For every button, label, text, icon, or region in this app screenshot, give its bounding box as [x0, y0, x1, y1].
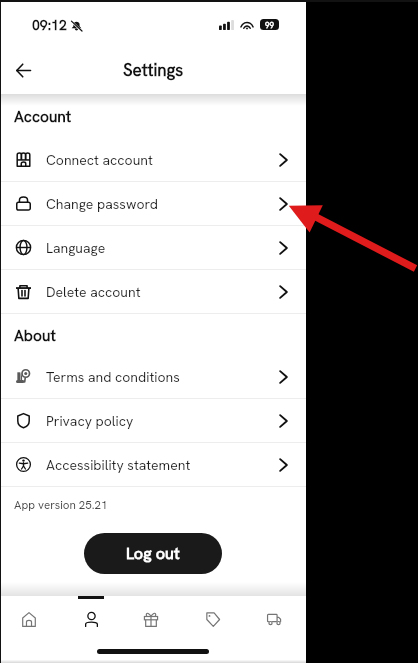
button[interactable]: Account [66, 596, 116, 640]
button[interactable]: Gifts [126, 596, 176, 640]
staticText: Terms and conditions [46, 368, 180, 386]
button[interactable]: Connect account [0, 138, 306, 182]
staticText: Change password [46, 195, 159, 213]
staticText: Language [46, 239, 106, 257]
button[interactable]: Delivery [249, 596, 299, 640]
staticText: Accessibility statement [46, 456, 191, 474]
staticText: Privacy policy [46, 412, 134, 430]
button[interactable]: Delete account [0, 270, 306, 314]
staticText: 99 [265, 20, 274, 30]
staticText: Connect account [46, 151, 153, 169]
button[interactable]: Back [8, 55, 38, 85]
staticText: Log out [126, 543, 180, 564]
staticText: About [14, 325, 56, 345]
staticText: Delete account [46, 283, 141, 301]
button[interactable]: Offers [188, 596, 238, 640]
button[interactable]: Privacy policy [0, 399, 306, 443]
button[interactable]: Home [4, 596, 54, 640]
staticText: Account [14, 106, 72, 126]
staticText: Settings [123, 59, 184, 81]
staticText: 09:12 [32, 16, 67, 34]
button[interactable]: Change password [0, 182, 306, 226]
button[interactable]: Accessibility statement [0, 443, 306, 487]
button[interactable]: Log out [84, 533, 222, 574]
button[interactable]: Language [0, 226, 306, 270]
staticText: App version 25.21 [14, 497, 108, 512]
button[interactable]: Terms and conditions [0, 355, 306, 399]
